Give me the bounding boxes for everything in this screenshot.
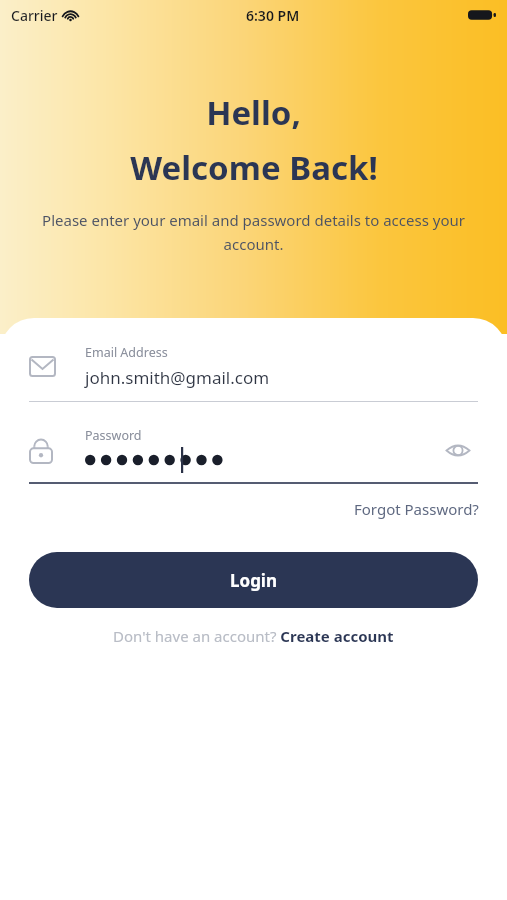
button[interactable]: Email Address — [0, 344, 507, 402]
button[interactable]: Show password — [438, 430, 478, 470]
staticText: Hello, — [206, 90, 301, 135]
staticText: Please enter your email and password det… — [38, 210, 469, 254]
button[interactable]: Don't have an account? Create account — [107, 622, 400, 650]
staticText: Welcome Back! — [130, 145, 378, 190]
staticText: john.smith@gmail.com — [85, 366, 270, 389]
staticText: Password — [85, 427, 142, 444]
staticText: Email Address — [85, 344, 168, 361]
staticText: Carrier — [11, 6, 58, 25]
button[interactable]: Password — [0, 427, 507, 484]
staticText: Forgot Password? — [354, 499, 479, 519]
staticText: 6:30 PM — [246, 6, 300, 25]
staticText: Login — [230, 569, 278, 592]
button[interactable]: Login — [29, 552, 478, 608]
button[interactable]: Forgot Password? — [350, 495, 483, 523]
staticText: Don't have an account? Create account — [113, 626, 394, 646]
